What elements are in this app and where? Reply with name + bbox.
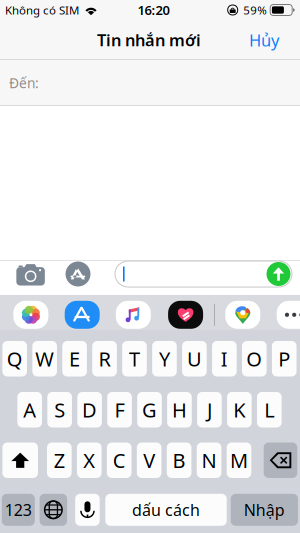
- staticText: B: [173, 447, 186, 474]
- staticText: G: [142, 396, 157, 423]
- staticText: Đến:: [9, 74, 39, 92]
- button[interactable]: C: [107, 442, 131, 478]
- button[interactable]: Dictate: [75, 494, 100, 526]
- button[interactable]: G: [137, 392, 162, 427]
- button[interactable]: Fitness: [168, 301, 203, 329]
- staticText: Hủy: [249, 29, 279, 51]
- staticText: L: [264, 396, 274, 423]
- staticText: 123: [5, 499, 32, 520]
- button[interactable]: Q: [2, 341, 27, 376]
- button[interactable]: M: [227, 442, 251, 478]
- staticText: N: [202, 447, 217, 474]
- button[interactable]: S: [47, 392, 72, 427]
- button[interactable]: N: [197, 442, 221, 478]
- button[interactable]: Return: [231, 494, 298, 526]
- button[interactable]: Shift: [2, 442, 38, 478]
- button[interactable]: Apps: [65, 261, 90, 286]
- staticText: T: [129, 345, 140, 372]
- button[interactable]: E: [62, 341, 87, 376]
- button[interactable]: Hủy: [240, 20, 288, 60]
- staticText: Không có SIM: [5, 2, 79, 18]
- button[interactable]: Camera: [16, 263, 45, 285]
- button[interactable]: W: [32, 341, 57, 376]
- button[interactable]: Delete: [264, 442, 297, 478]
- button[interactable]: H: [167, 392, 192, 427]
- staticText: K: [233, 396, 245, 423]
- staticText: C: [113, 447, 126, 474]
- button[interactable]: I: [212, 341, 237, 376]
- button[interactable]: Maps: [225, 301, 260, 329]
- button[interactable]: O: [242, 341, 267, 376]
- staticText: E: [69, 345, 80, 372]
- staticText: M: [230, 447, 248, 474]
- staticText: dấu cách: [132, 499, 200, 520]
- staticText: P: [278, 345, 290, 372]
- staticText: I: [221, 345, 228, 372]
- button[interactable]: Y: [152, 341, 177, 376]
- staticText: A: [23, 396, 36, 423]
- button[interactable]: J: [197, 392, 222, 427]
- staticText: S: [54, 396, 65, 423]
- staticText: Y: [159, 345, 170, 372]
- staticText: F: [114, 396, 124, 423]
- button[interactable]: Z: [47, 442, 72, 478]
- staticText: Q: [7, 345, 23, 372]
- button[interactable]: Photos: [13, 301, 48, 329]
- button[interactable]: T: [122, 341, 147, 376]
- button[interactable]: D: [77, 392, 102, 427]
- staticText: W: [35, 345, 54, 372]
- button[interactable]: P: [272, 341, 296, 376]
- staticText: R: [98, 345, 110, 372]
- staticText: 16:20: [138, 1, 170, 19]
- staticText: O: [246, 345, 262, 372]
- staticText: U: [187, 345, 202, 372]
- button[interactable]: V: [137, 442, 161, 478]
- button[interactable]: More: [277, 301, 300, 329]
- button[interactable]: App Store: [65, 301, 100, 329]
- staticText: J: [207, 396, 212, 423]
- button[interactable]: L: [257, 392, 282, 427]
- staticText: Nhập: [244, 499, 285, 520]
- button[interactable]: Next keyboard: [40, 494, 67, 526]
- staticText: Z: [54, 447, 65, 474]
- button[interactable]: Music: [116, 301, 151, 329]
- button[interactable]: A: [17, 392, 42, 427]
- button[interactable]: U: [182, 341, 207, 376]
- staticText: H: [172, 396, 187, 423]
- button[interactable]: B: [167, 442, 191, 478]
- button[interactable]: Numbers: [2, 494, 35, 526]
- staticText: X: [83, 447, 95, 474]
- staticText: 59%: [243, 2, 267, 18]
- staticText: Tin nhắn mới: [97, 29, 201, 51]
- staticText: D: [82, 396, 97, 423]
- button[interactable]: X: [77, 442, 102, 478]
- button[interactable]: Space: [105, 494, 227, 526]
- button[interactable]: F: [107, 392, 132, 427]
- button[interactable]: R: [92, 341, 117, 376]
- button[interactable]: K: [227, 392, 252, 427]
- staticText: V: [143, 447, 155, 474]
